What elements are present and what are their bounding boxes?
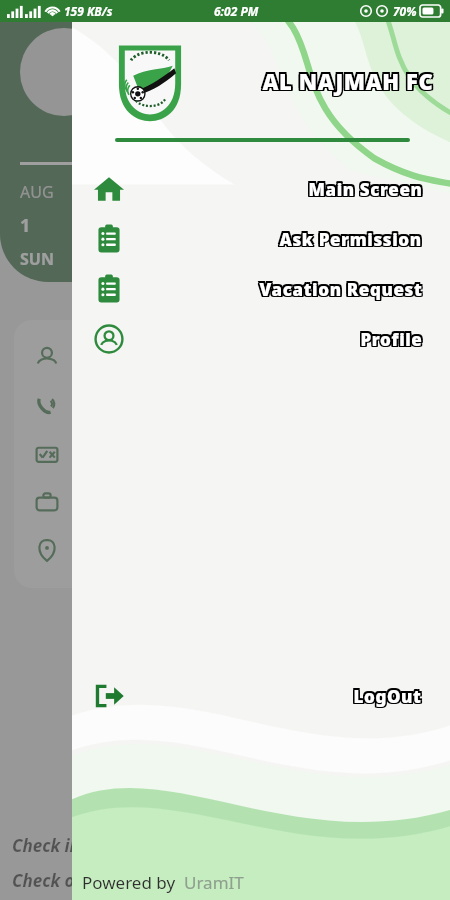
staticText: Check out [12, 869, 92, 892]
staticText: SUN [20, 248, 54, 270]
staticText: Check in [12, 834, 80, 857]
staticText: 159 KB/s [64, 3, 113, 19]
other: Club logo [108, 38, 192, 122]
button[interactable] [72, 214, 450, 264]
button[interactable] [72, 314, 450, 364]
staticText: 1 [20, 213, 31, 238]
button[interactable] [72, 671, 450, 721]
staticText: 70% [393, 3, 417, 19]
staticText: AUG [20, 181, 54, 203]
staticText: UramIT [184, 871, 244, 894]
staticText: 6:02 PM [214, 3, 259, 19]
staticText: Powered by [82, 871, 176, 894]
button[interactable] [72, 164, 450, 214]
button[interactable] [72, 264, 450, 314]
